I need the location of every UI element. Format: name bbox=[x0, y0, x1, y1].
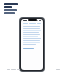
other: Dynamic Island bbox=[28, 19, 37, 21]
button[interactable] bbox=[56, 69, 60, 70]
button[interactable] bbox=[23, 48, 34, 49]
button[interactable] bbox=[23, 23, 41, 24]
button[interactable] bbox=[4, 3, 19, 14]
button[interactable] bbox=[7, 69, 21, 70]
